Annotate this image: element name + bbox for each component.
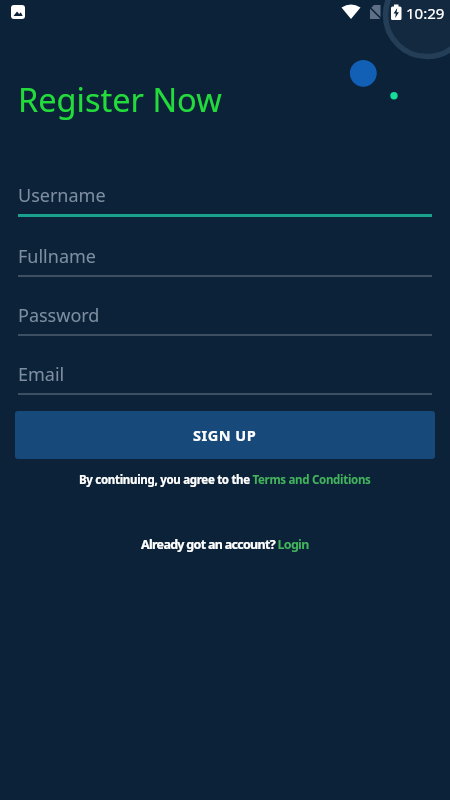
button[interactable]: By continuing, you agree to the Terms an… — [79, 472, 371, 488]
button[interactable]: Already got an account? Login — [141, 536, 309, 553]
staticText: Password — [18, 303, 100, 328]
staticText: SIGN UP — [193, 425, 257, 445]
staticText: Fullname — [18, 244, 96, 269]
button[interactable]: Password — [18, 303, 432, 336]
staticText: Email — [18, 362, 65, 387]
button[interactable]: Fullname — [18, 244, 432, 277]
staticText: Register Now — [18, 77, 222, 121]
button[interactable]: Email — [18, 362, 432, 395]
staticText: 10:29 — [406, 3, 445, 23]
staticText: Username — [18, 183, 106, 208]
button[interactable]: Username — [18, 183, 432, 217]
button[interactable]: SIGN UP — [15, 411, 435, 459]
